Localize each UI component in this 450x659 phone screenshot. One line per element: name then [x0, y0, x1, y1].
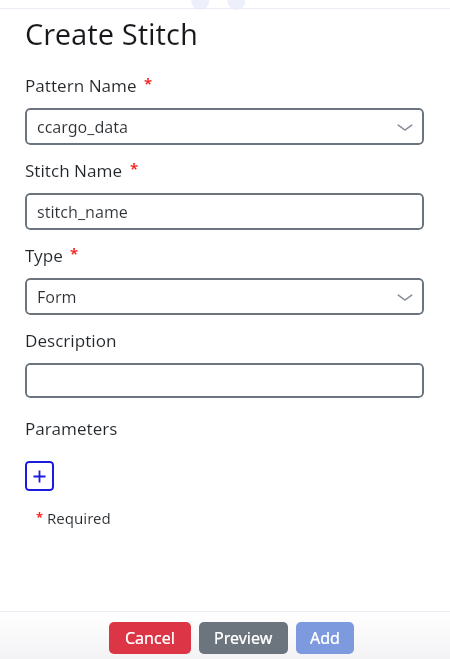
button[interactable]: Description input	[25, 363, 424, 398]
staticText: Form	[37, 286, 77, 308]
staticText: Add	[310, 627, 340, 649]
staticText: Create Stitch	[25, 14, 198, 53]
staticText: Description	[25, 329, 117, 352]
staticText: stitch_name	[37, 201, 128, 223]
staticText: Preview	[214, 627, 273, 649]
staticText: Cancel	[125, 627, 175, 649]
button[interactable]: Stitch Name input	[25, 193, 424, 230]
staticText: *	[144, 73, 153, 93]
button[interactable]: Preview	[199, 622, 288, 654]
button[interactable]: Type select	[25, 278, 424, 315]
button[interactable]: Cancel	[109, 622, 191, 654]
staticText: Pattern Name	[25, 74, 137, 97]
staticText: Type	[25, 244, 63, 267]
staticText: ccargo_data	[37, 116, 128, 138]
staticText: *	[36, 508, 44, 526]
staticText: *	[130, 158, 139, 178]
staticText: Required	[47, 508, 111, 528]
staticText: *	[70, 243, 79, 263]
button[interactable]: Pattern Name select	[25, 108, 424, 145]
staticText: Parameters	[25, 417, 118, 440]
button[interactable]: Add	[296, 622, 354, 654]
staticText: Stitch Name	[25, 159, 123, 182]
button[interactable]: Add parameter	[25, 461, 54, 491]
